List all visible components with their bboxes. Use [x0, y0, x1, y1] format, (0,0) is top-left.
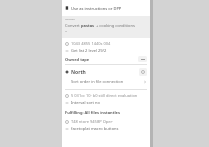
button[interactable]: Sort order in file connection	[62, 77, 150, 86]
button[interactable]: LOCATION	[62, 16, 150, 38]
button[interactable]: Interval sort no	[62, 99, 150, 106]
staticText: Owned tape	[65, 57, 138, 62]
button[interactable]: More options	[138, 56, 147, 62]
button[interactable]: 5 031cc 10· b0 still direct evaluation	[62, 92, 150, 99]
staticText: Use as instructions or DPP	[71, 6, 147, 11]
staticText: to	[65, 30, 67, 33]
staticText: North	[71, 69, 139, 76]
button[interactable]: Fulfilling: All files instantles	[62, 108, 150, 117]
staticText: T48 ntore 9458P Oper·	[71, 119, 147, 124]
staticText: pastas	[81, 23, 95, 28]
staticText: Fulfilling: All files instantles	[65, 110, 121, 115]
staticText: Interval sort no	[71, 100, 147, 105]
staticText: LOCATION	[65, 18, 75, 21]
staticText: Convert	[65, 23, 81, 28]
button[interactable]: facetoplat macro buttons	[62, 125, 150, 132]
button[interactable]: Get list 2 level 29/2	[62, 47, 150, 54]
button[interactable]: Use as instructions or DPP	[62, 0, 150, 16]
button[interactable]: North	[62, 67, 150, 77]
staticText: + cooking conditions	[95, 23, 135, 28]
staticText: 5 031cc 10· b0 still direct evaluation	[71, 93, 147, 98]
staticText: facetoplat macro buttons	[71, 126, 147, 131]
staticText: Get list 2 level 29/2	[71, 48, 147, 53]
button[interactable]: T48 ntore 9458P Oper·	[62, 118, 150, 125]
button[interactable]: Owned tape	[62, 54, 150, 64]
button[interactable]: 1043 4855 1440s 004	[62, 40, 150, 47]
button[interactable]: Expand section	[139, 68, 147, 76]
staticText: 1043 4855 1440s 004	[71, 41, 147, 46]
staticText: Sort order in file connection	[71, 79, 143, 84]
